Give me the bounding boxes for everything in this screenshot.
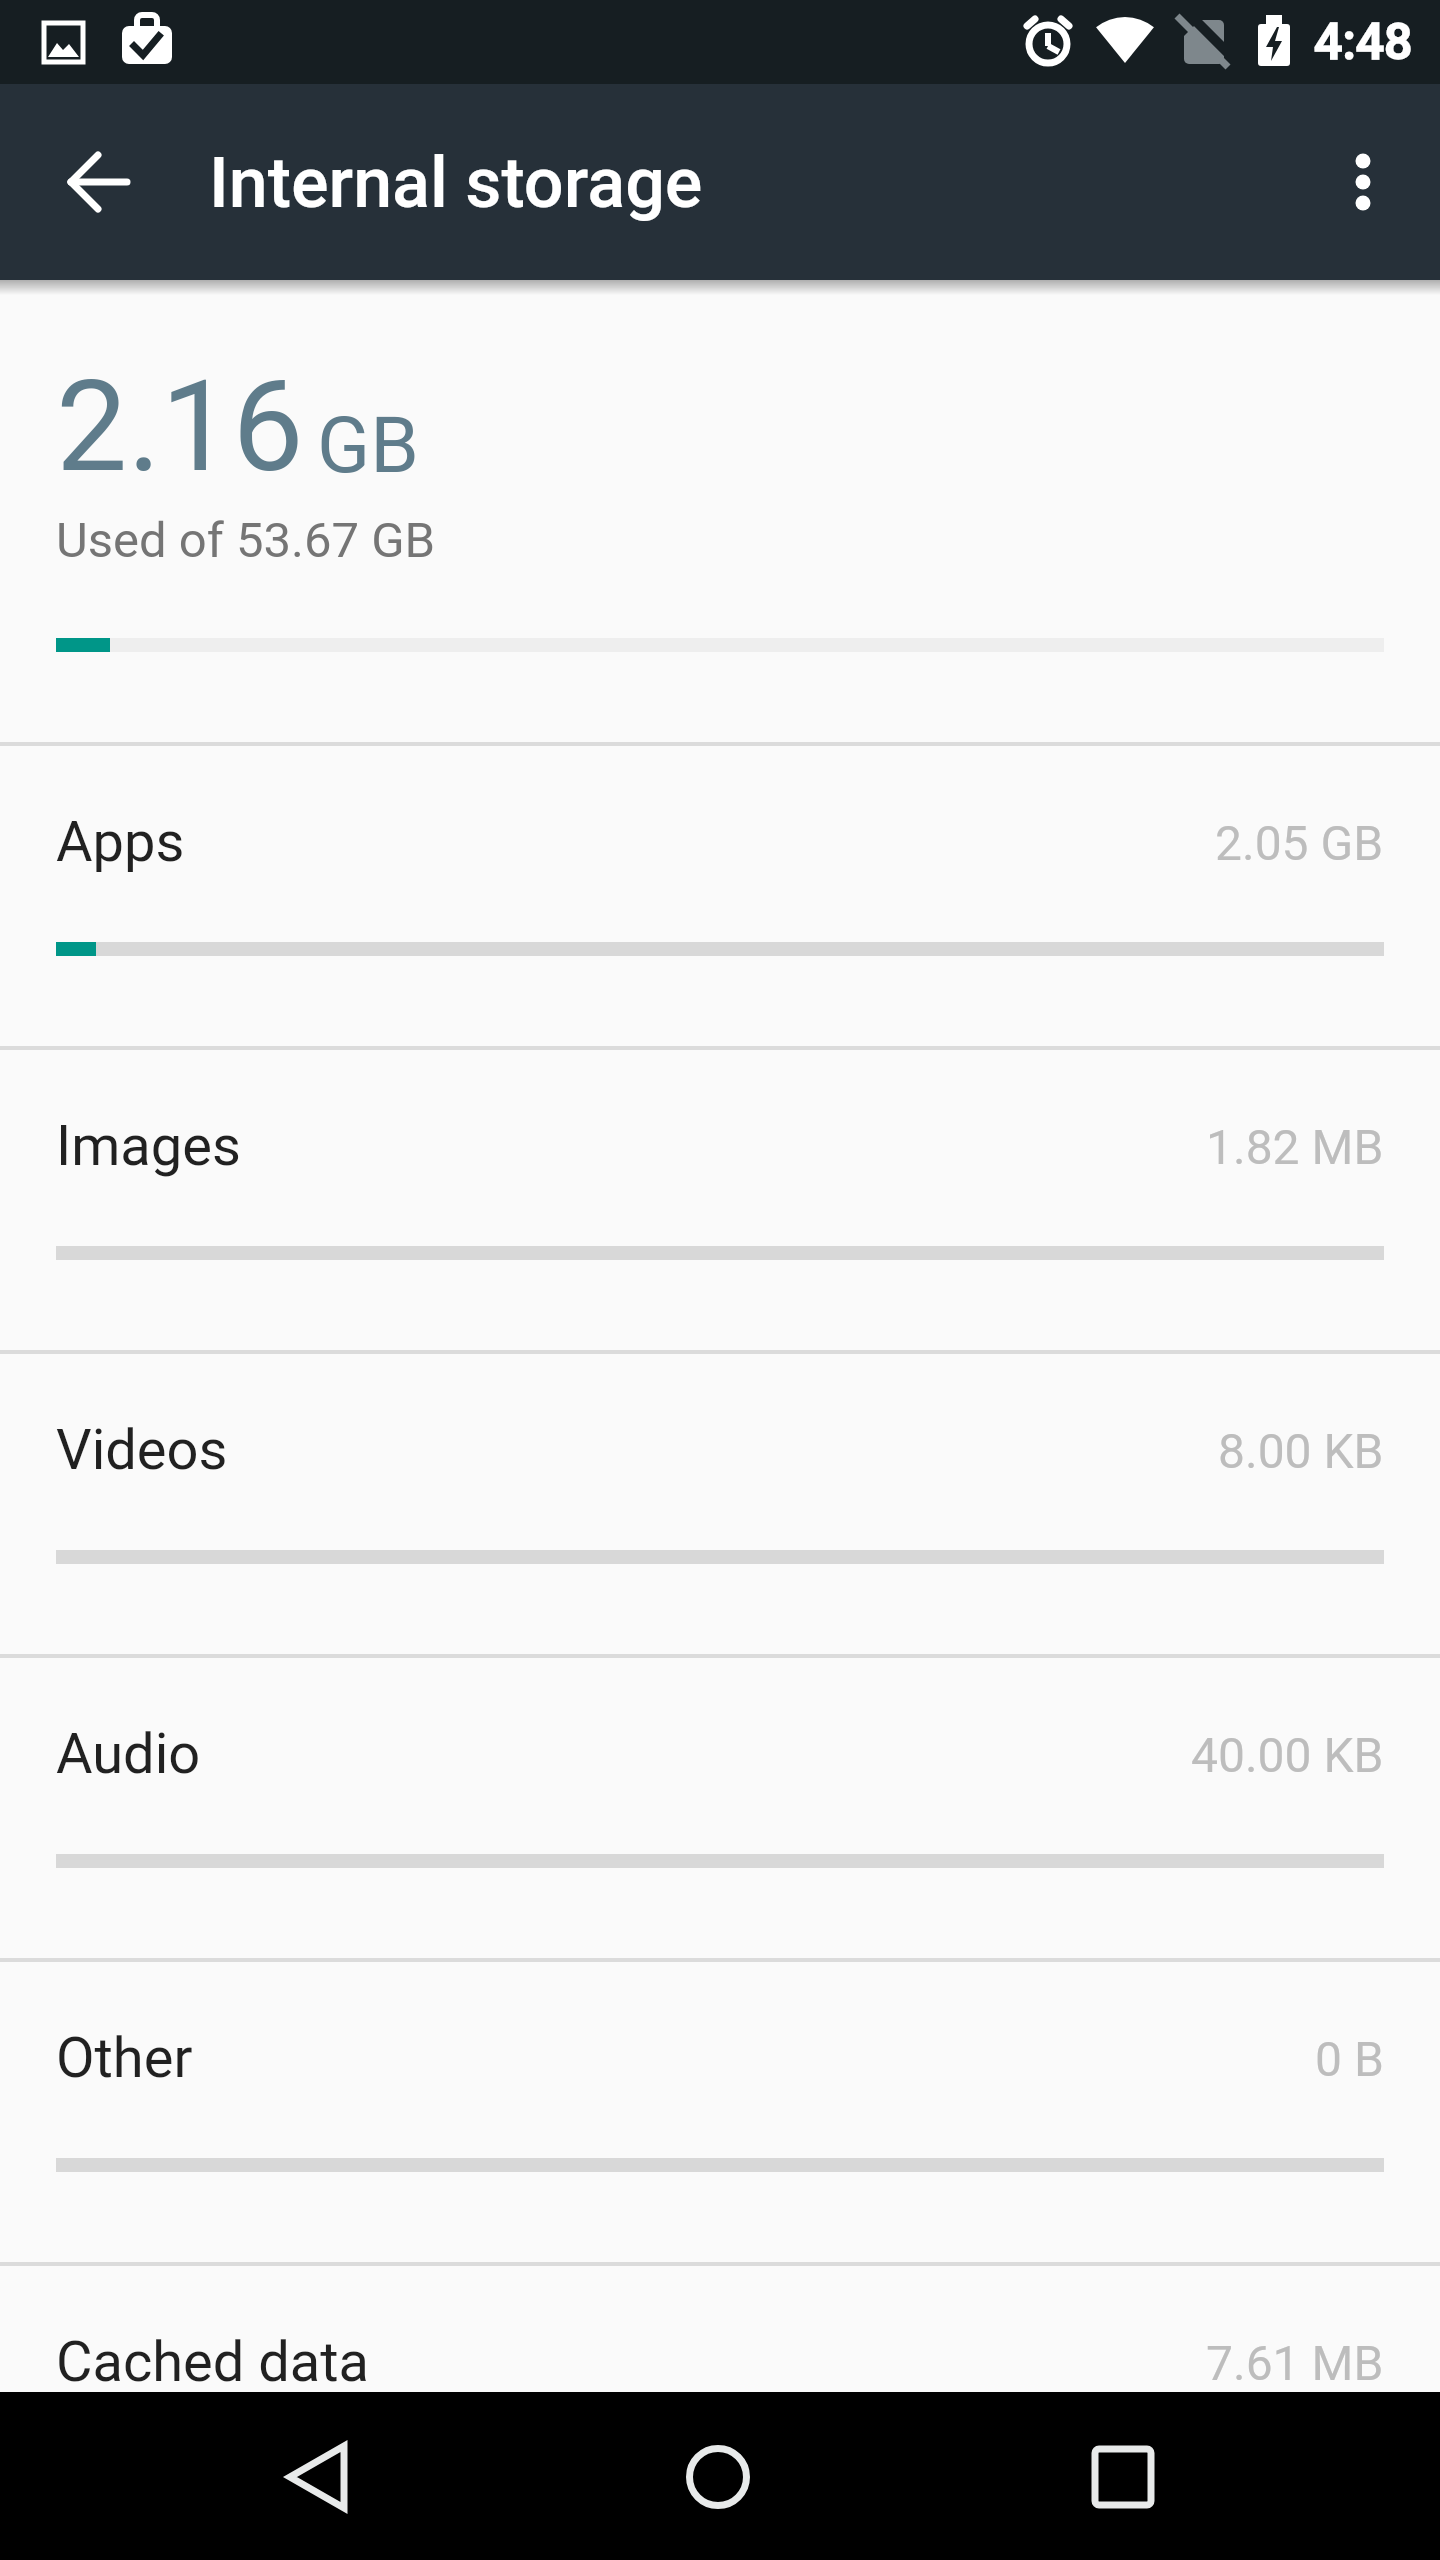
button[interactable] <box>1307 126 1419 238</box>
button[interactable]: Apps <box>0 746 1440 1046</box>
staticText: Cached data <box>56 2329 370 2395</box>
button[interactable] <box>634 2392 802 2560</box>
staticText: Used of 53.67 GB <box>56 512 436 569</box>
button[interactable]: Other <box>0 1962 1440 2262</box>
staticText: Audio <box>56 1721 201 1787</box>
staticText: 2.05 GB <box>1215 815 1384 871</box>
staticText: 0 B <box>1315 2031 1384 2087</box>
staticText: Other <box>56 2025 193 2091</box>
button[interactable]: Images <box>0 1050 1440 1350</box>
staticText: 1.82 MB <box>1206 1119 1384 1175</box>
staticText: 7.61 MB <box>1206 2335 1384 2391</box>
staticText: GB <box>317 400 419 491</box>
button[interactable]: Videos <box>0 1354 1440 1654</box>
button[interactable] <box>43 126 155 238</box>
staticText: Internal storage <box>209 142 703 224</box>
button[interactable]: Cached data <box>0 2266 1440 2560</box>
staticText: 40.00 KB <box>1191 1727 1384 1783</box>
staticText: 8.00 KB <box>1218 1423 1384 1479</box>
staticText: 4:48 <box>1314 13 1413 72</box>
staticText: Videos <box>56 1417 228 1483</box>
staticText: Images <box>56 1113 241 1179</box>
staticText: 2.16 <box>56 352 304 501</box>
button[interactable]: Audio <box>0 1658 1440 1958</box>
button[interactable] <box>232 2392 400 2560</box>
button[interactable] <box>1038 2392 1206 2560</box>
staticText: Apps <box>56 809 185 875</box>
